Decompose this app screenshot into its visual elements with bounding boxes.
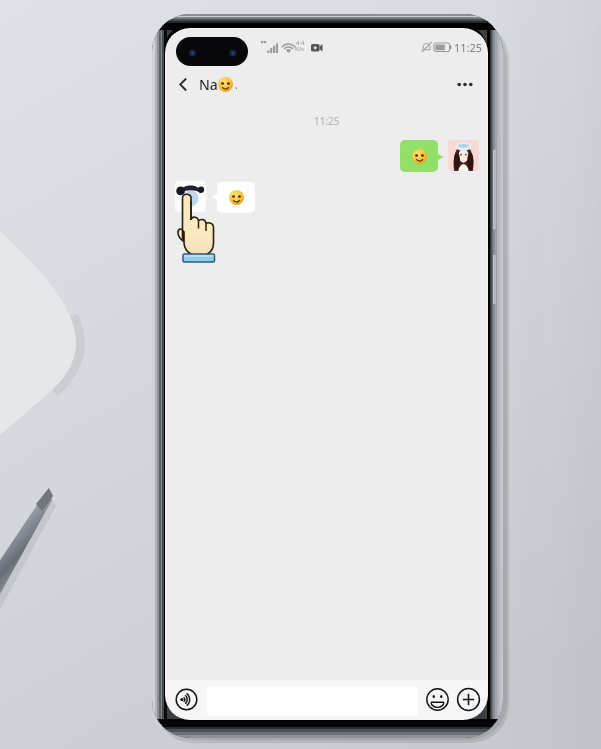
staticText: 4.4: [296, 39, 305, 47]
staticText: 、: [234, 78, 244, 91]
button[interactable]: Your avatar: [448, 140, 479, 171]
staticText: Na: [199, 75, 218, 94]
staticText: K/s: [295, 45, 304, 53]
button[interactable]: [217, 182, 255, 213]
staticText: 11:25: [314, 114, 340, 128]
button[interactable]: Contact avatar: [175, 181, 206, 212]
button[interactable]: More options: [450, 70, 480, 99]
button[interactable]: [400, 140, 438, 172]
button[interactable]: Voice message: [175, 688, 198, 711]
button[interactable]: Back: [166, 70, 196, 99]
button[interactable]: Emoji: [425, 687, 450, 712]
button[interactable]: More: [456, 687, 481, 712]
staticText: 11:25: [454, 40, 483, 55]
